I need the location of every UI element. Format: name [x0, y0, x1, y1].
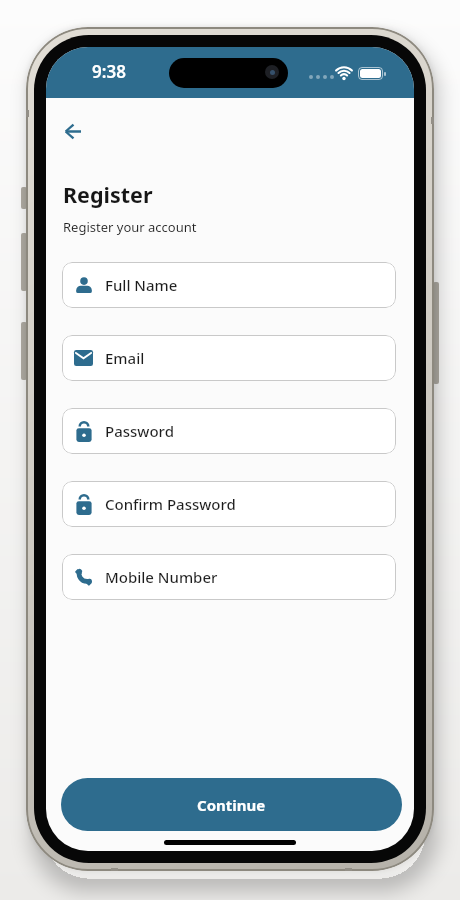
- staticText: Mobile Number: [105, 567, 218, 587]
- staticText: Continue: [197, 795, 266, 815]
- staticText: Register: [63, 180, 153, 209]
- button[interactable]: Mobile Number: [62, 554, 396, 600]
- staticText: Register your account: [63, 218, 197, 236]
- staticText: Email: [105, 348, 145, 368]
- staticText: Confirm Password: [105, 494, 236, 514]
- button[interactable]: [54, 113, 92, 149]
- staticText: Full Name: [105, 275, 178, 295]
- button[interactable]: Password: [62, 408, 396, 454]
- button[interactable]: Full Name: [62, 262, 396, 308]
- staticText: 9:38: [92, 60, 126, 83]
- staticText: Password: [105, 421, 174, 441]
- button[interactable]: Confirm Password: [62, 481, 396, 527]
- button[interactable]: Email: [62, 335, 396, 381]
- button[interactable]: Continue: [61, 778, 402, 831]
